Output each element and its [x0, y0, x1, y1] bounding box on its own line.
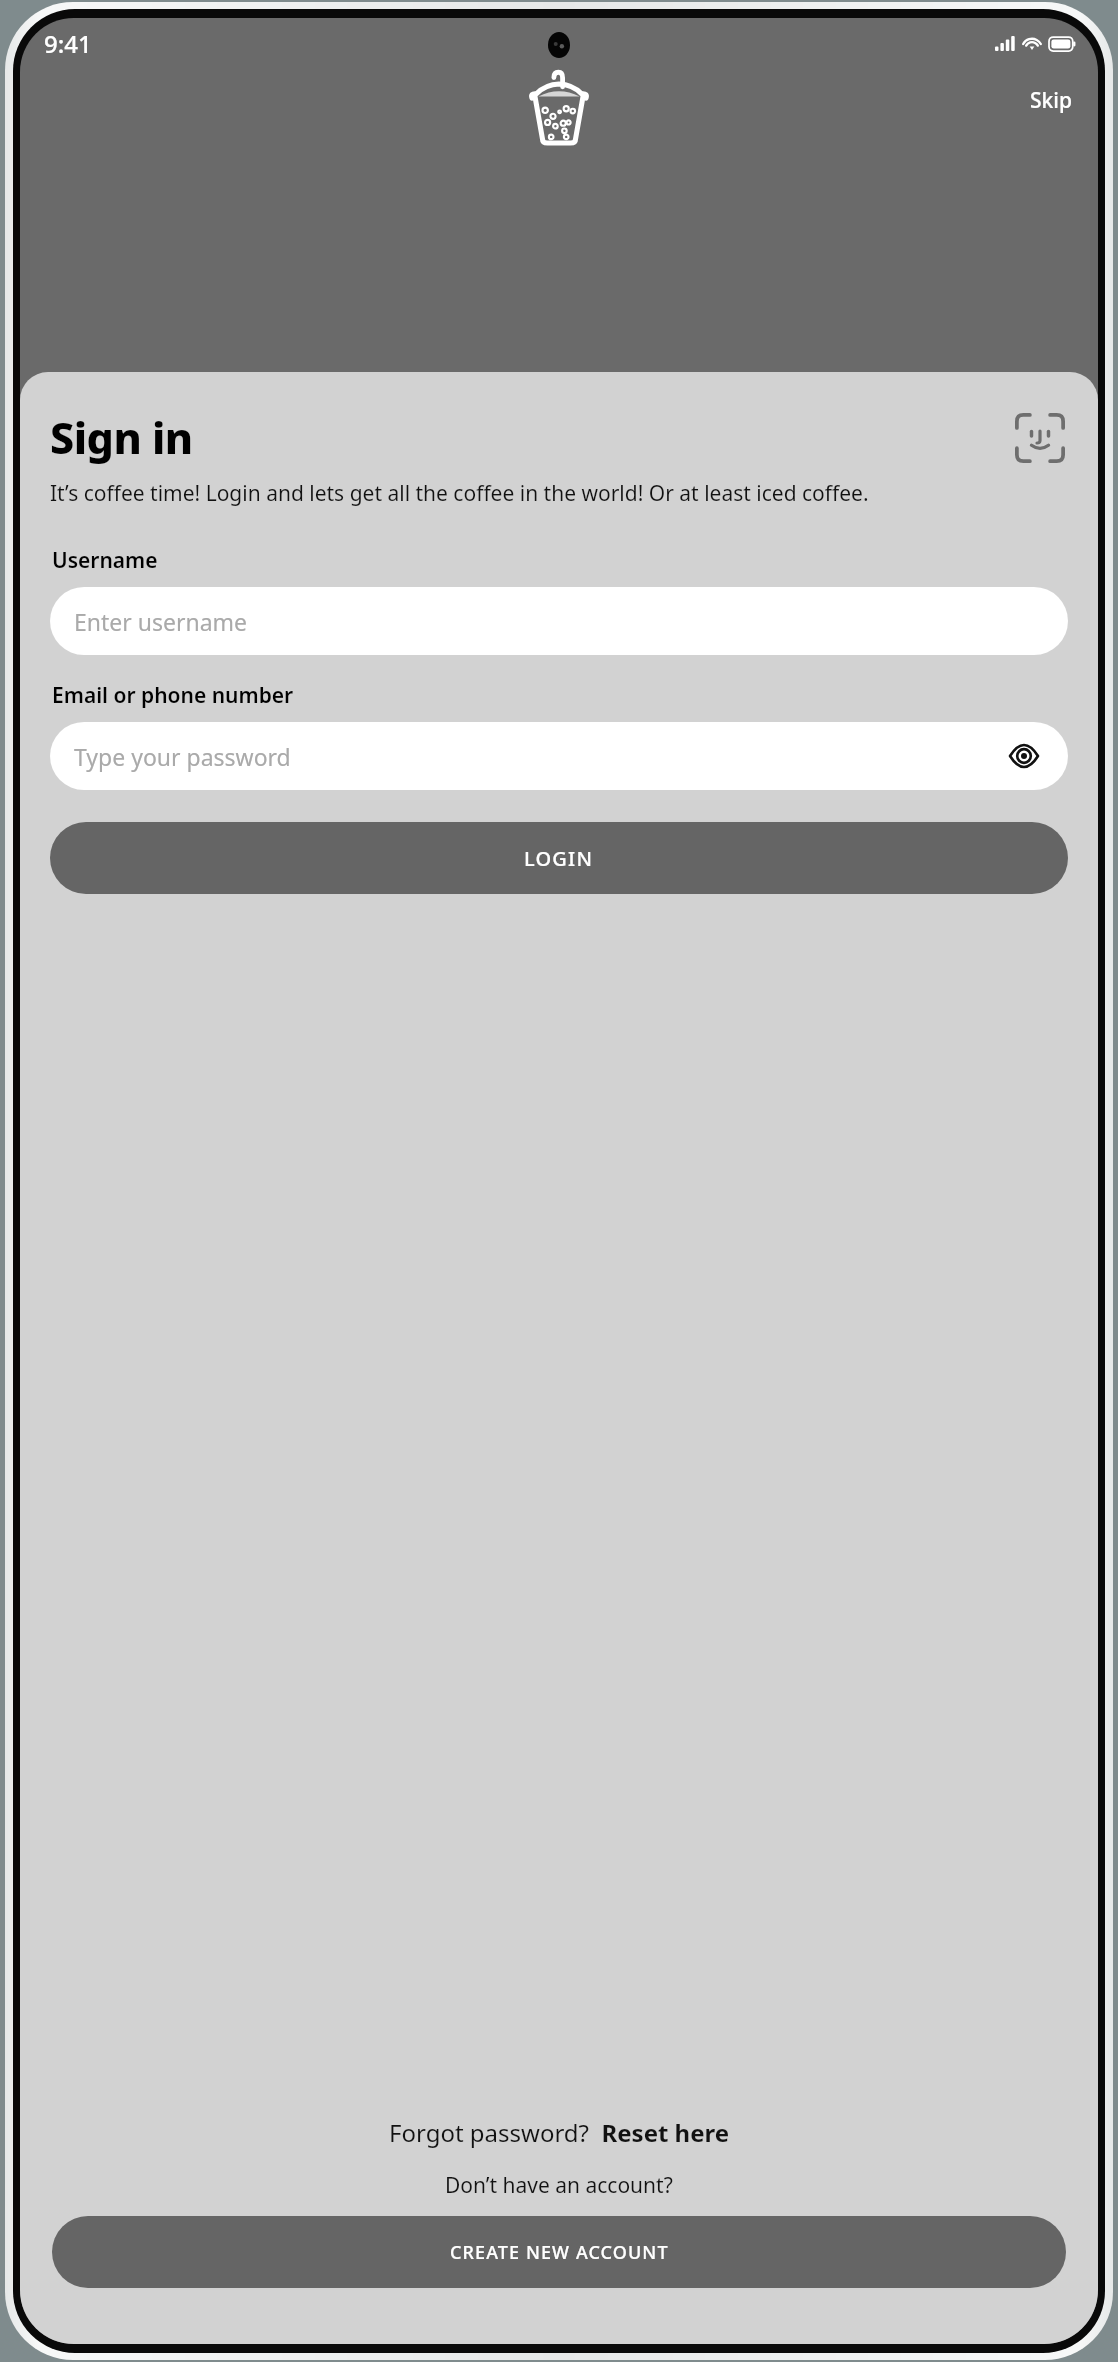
staticText: Username — [52, 546, 158, 575]
button[interactable]: Show password — [1004, 736, 1044, 776]
staticText: Enter username — [74, 606, 248, 637]
button[interactable]: Don’t have an account? — [50, 2171, 1068, 2200]
button[interactable]: Skip — [1024, 82, 1078, 119]
button[interactable]: Enter username — [50, 587, 1068, 655]
staticText: Email or phone number — [52, 681, 294, 710]
staticText: 9:41 — [44, 27, 92, 60]
button[interactable]: LOGIN — [50, 822, 1068, 894]
staticText: LOGIN — [524, 845, 594, 872]
staticText: Don’t have an account? — [445, 2171, 673, 2200]
button[interactable]: CREATE NEW ACCOUNT — [52, 2216, 1066, 2288]
staticText: Type your password — [74, 741, 291, 772]
staticText: Forgot password? Reset here — [389, 2116, 730, 2149]
button[interactable]: Type your password — [50, 722, 1068, 790]
button[interactable]: Sign in with Face ID — [1012, 410, 1068, 466]
staticText: It’s coffee time! Login and lets get all… — [50, 479, 997, 508]
button[interactable]: Forgot password? Reset here — [385, 2112, 734, 2153]
staticText: Skip — [1030, 86, 1072, 115]
staticText: Sign in — [50, 408, 193, 467]
staticText: CREATE NEW ACCOUNT — [450, 2240, 669, 2265]
